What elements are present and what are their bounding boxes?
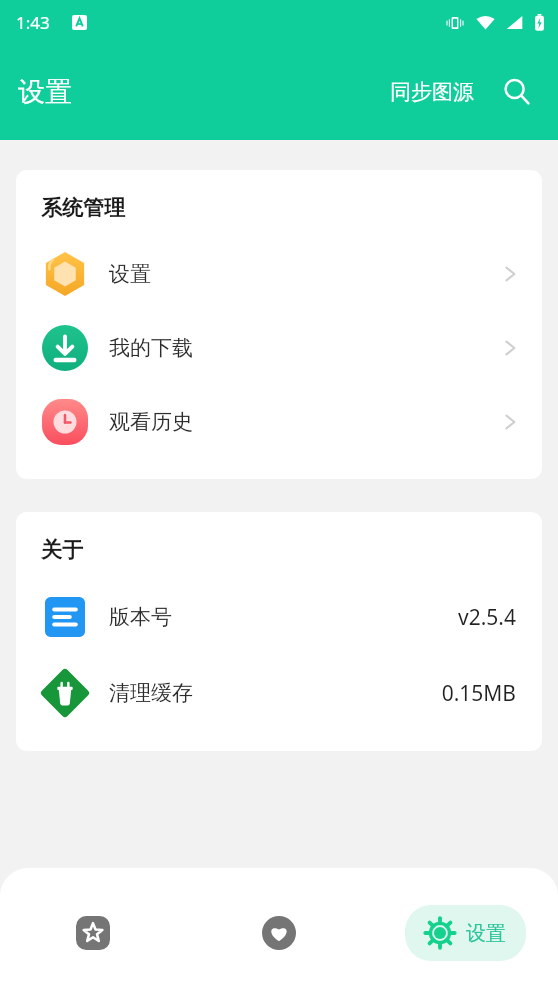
button[interactable]: 清理缓存 [16,655,542,731]
staticText: 1:43 [16,11,50,34]
button[interactable]: 我的下载 [16,311,542,385]
staticText: 设置 [109,261,151,287]
staticText: 设置 [18,75,72,109]
button[interactable]: 同步图源 [386,73,478,111]
staticText: 0.15MB [441,679,516,708]
staticText: 我的下载 [109,335,193,361]
staticText: 观看历史 [109,409,193,435]
button[interactable]: 设置 [405,905,526,961]
staticText: 版本号 [109,604,172,630]
button[interactable]: Likes [252,906,306,960]
staticText: 关于 [41,537,83,563]
staticText: 设置 [466,921,506,946]
button[interactable]: 版本号 [16,579,542,655]
staticText: 同步图源 [390,79,474,105]
button[interactable]: 设置 [16,237,542,311]
button[interactable]: Search [496,71,538,113]
button[interactable]: 观看历史 [16,385,542,459]
staticText: 清理缓存 [109,680,193,706]
staticText: v2.5.4 [458,603,516,632]
button[interactable]: Favorites [66,906,120,960]
staticText: 系统管理 [41,195,125,221]
